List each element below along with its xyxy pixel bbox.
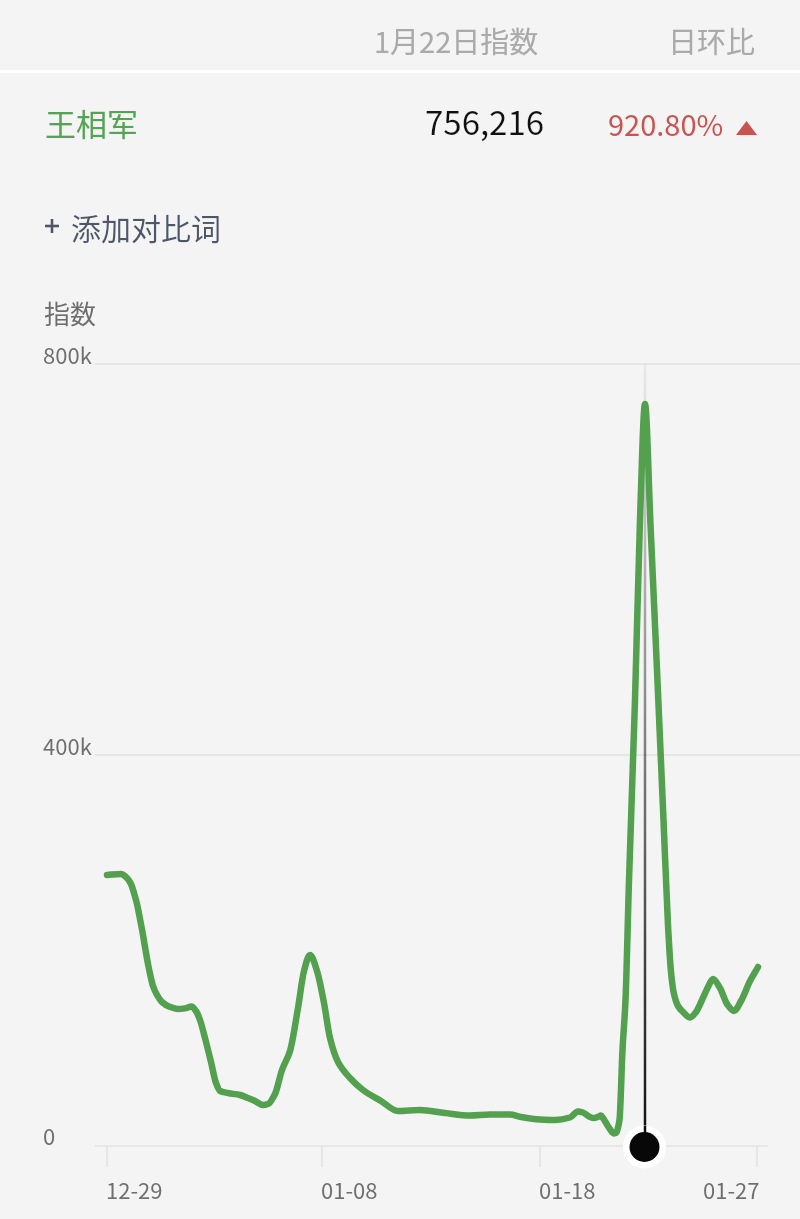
staticText: 01-18 [539, 1173, 596, 1205]
staticText: 756,216 [425, 97, 545, 145]
staticText: 1月22日指数 [374, 19, 539, 61]
staticText: 01-27 [703, 1173, 760, 1205]
staticText: 添加对比词 [71, 205, 221, 248]
staticText: 800k [43, 338, 92, 370]
staticText: 920.80% [608, 102, 724, 144]
other: Rising [736, 121, 757, 135]
staticText: 指数 [44, 294, 97, 332]
staticText: 01-08 [321, 1173, 378, 1205]
button[interactable]: 添加对比词 [0, 190, 800, 262]
staticText: 日环比 [668, 19, 756, 61]
button[interactable]: 王相军 [0, 74, 800, 168]
staticText: 400k [43, 729, 92, 761]
staticText: 0 [43, 1119, 56, 1151]
staticText: 12-29 [106, 1173, 163, 1205]
staticText: 王相军 [45, 100, 138, 145]
